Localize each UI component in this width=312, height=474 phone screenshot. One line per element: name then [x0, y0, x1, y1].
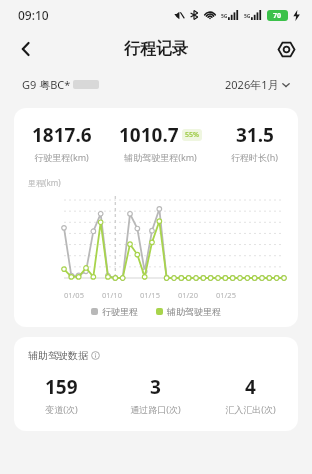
button[interactable]: 31.5: [211, 122, 298, 163]
button[interactable]: 1010.7: [109, 122, 211, 163]
button[interactable]: 辅助驾驶数据: [28, 349, 100, 362]
staticText: 行程时长(h): [231, 151, 278, 163]
staticText: 行驶里程: [102, 306, 138, 317]
button[interactable]: 辅助驾驶里程: [156, 306, 221, 317]
button[interactable]: G9 粤BC*: [22, 77, 99, 92]
staticText: 01/05: [64, 290, 84, 300]
staticText: 行程记录: [124, 39, 188, 59]
button[interactable]: Back: [8, 31, 44, 67]
staticText: 辅助驾驶数据: [28, 349, 88, 362]
staticText: 1010.7: [119, 122, 179, 148]
staticText: 汇入汇出(次): [225, 403, 276, 415]
staticText: 变道(次): [45, 403, 78, 415]
staticText: 通过路口(次): [130, 403, 181, 415]
staticText: 01/10: [102, 290, 122, 300]
staticText: 70: [273, 11, 282, 21]
staticText: 31.5: [236, 122, 274, 148]
button[interactable]: 159: [14, 374, 108, 415]
staticText: 01/15: [140, 290, 160, 300]
staticText: 1817.6: [32, 122, 92, 148]
staticText: 4: [245, 374, 256, 400]
staticText: 行驶里程(km): [34, 151, 89, 163]
button[interactable]: Settings: [268, 31, 304, 67]
staticText: 5G: [244, 13, 251, 20]
button[interactable]: 行驶里程: [91, 306, 138, 317]
staticText: 里程(km): [28, 177, 61, 188]
staticText: 55%: [185, 130, 199, 140]
staticText: 01/25: [216, 290, 236, 300]
button[interactable]: 4: [203, 374, 298, 415]
staticText: 3: [150, 374, 161, 400]
staticText: 2026年1月: [225, 77, 279, 92]
staticText: 09:10: [18, 7, 49, 23]
button[interactable]: 3: [108, 374, 203, 415]
staticText: 159: [45, 374, 78, 400]
button[interactable]: 2026年1月: [225, 77, 290, 92]
staticText: 辅助驾驶里程(km): [124, 151, 197, 163]
staticText: 01/20: [178, 290, 198, 300]
staticText: G9 粤BC*: [22, 77, 71, 92]
button[interactable]: 1817.6: [14, 122, 109, 163]
staticText: 辅助驾驶里程: [167, 306, 221, 317]
staticText: 5G: [221, 13, 228, 20]
